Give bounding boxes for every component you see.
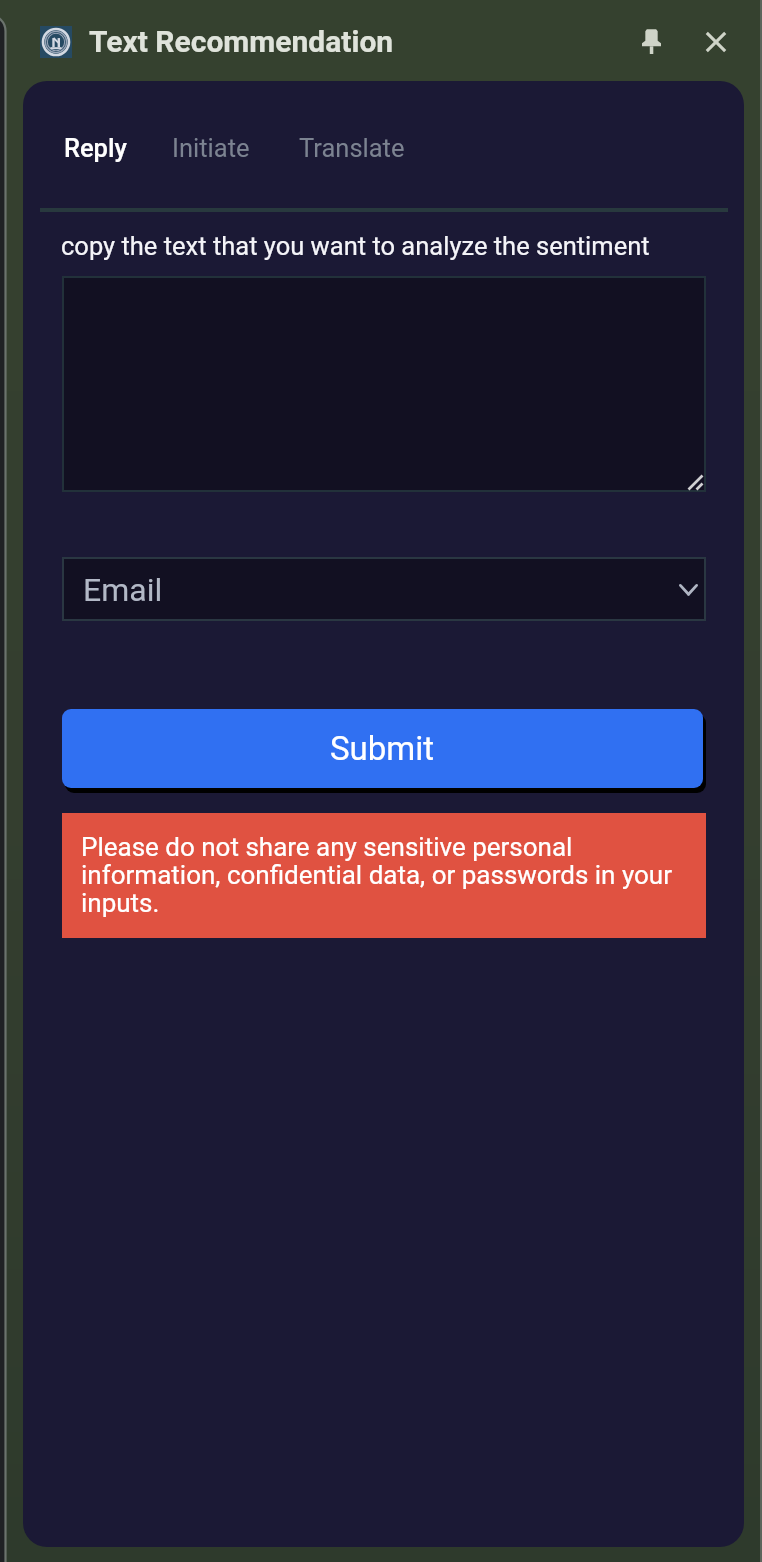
staticText: Email <box>83 571 163 609</box>
button[interactable]: Close <box>692 18 739 65</box>
button[interactable]: Pin <box>628 17 675 64</box>
staticText: Please do not share any sensitive person… <box>81 832 681 919</box>
button[interactable]: Submit <box>62 709 703 788</box>
staticText: Submit <box>330 729 435 768</box>
button[interactable]: Email <box>64 559 704 619</box>
staticText: Translate <box>299 133 405 163</box>
staticText: Initiate <box>172 133 250 163</box>
button[interactable]: Initiate <box>172 133 250 163</box>
button[interactable] <box>64 278 704 490</box>
staticText: Text Recommendation <box>89 24 394 59</box>
button[interactable]: Translate <box>299 133 405 163</box>
staticText: Reply <box>64 133 127 163</box>
staticText: copy the text that you want to analyze t… <box>61 231 650 261</box>
button[interactable]: Reply <box>64 133 127 163</box>
